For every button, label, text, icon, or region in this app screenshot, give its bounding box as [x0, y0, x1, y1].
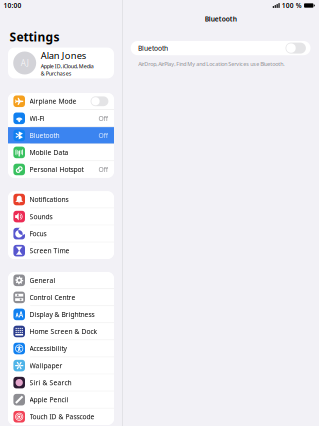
button[interactable]: Bluetooth: [8, 127, 114, 144]
staticText: Settings: [9, 29, 59, 45]
button[interactable]: Wallpaper: [8, 357, 114, 374]
staticText: Off: [98, 131, 108, 140]
button[interactable]: Apple Pencil: [8, 391, 114, 408]
staticText: Display & Brightness: [30, 310, 95, 319]
staticText: Airplane Mode: [30, 97, 77, 106]
button[interactable]: Personal Hotspot: [8, 161, 114, 178]
button[interactable]: Control Centre: [8, 289, 114, 306]
button[interactable]: Home Screen & Dock: [8, 323, 114, 340]
button[interactable]: General: [8, 272, 114, 289]
button[interactable]: Notifications: [8, 191, 114, 208]
button[interactable]: Mobile Data: [8, 144, 114, 161]
staticText: Bluetooth: [138, 44, 168, 53]
staticText: Mobile Data: [30, 148, 69, 157]
staticText: Focus: [30, 229, 47, 238]
staticText: Bluetooth: [205, 15, 237, 23]
staticText: AJ: [21, 58, 29, 68]
staticText: Control Centre: [30, 293, 76, 302]
button[interactable]: Display & Brightness: [8, 306, 114, 323]
staticText: Notifications: [30, 195, 69, 204]
staticText: Off: [98, 165, 108, 174]
staticText: Personal Hotspot: [30, 165, 84, 174]
button[interactable]: Focus: [8, 225, 114, 242]
button[interactable]: Touch ID & Passcode: [8, 408, 114, 425]
staticText: 100 %: [282, 1, 302, 10]
staticText: & Purchases: [41, 70, 72, 77]
staticText: Siri & Search: [30, 378, 72, 387]
staticText: Alan Jones: [41, 49, 86, 61]
staticText: Accessibility: [30, 344, 67, 353]
staticText: Sounds: [30, 212, 53, 221]
staticText: Off: [98, 114, 108, 123]
staticText: Wallpaper: [30, 361, 63, 370]
staticText: Apple Pencil: [30, 395, 69, 404]
button[interactable]: Airplane Mode: [8, 93, 114, 110]
staticText: Touch ID & Passcode: [30, 412, 95, 421]
button[interactable]: Accessibility: [8, 340, 114, 357]
staticText: Bluetooth: [30, 131, 60, 140]
button[interactable]: Wi-Fi: [8, 110, 114, 127]
staticText: Apple ID, iCloud, Media: [41, 63, 94, 70]
staticText: Wi-Fi: [30, 114, 45, 123]
button[interactable]: Screen Time: [8, 242, 114, 259]
staticText: Screen Time: [30, 246, 70, 255]
button[interactable]: Sounds: [8, 208, 114, 225]
button[interactable]: Siri & Search: [8, 374, 114, 391]
button[interactable]: AJ: [0, 48, 122, 78]
staticText: General: [30, 276, 56, 285]
staticText: Home Screen & Dock: [30, 327, 98, 336]
staticText: AirDrop, AirPlay, Find My and Location S…: [138, 60, 284, 67]
staticText: 10:00: [3, 1, 21, 10]
